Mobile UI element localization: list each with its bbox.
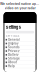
button[interactable]: Sounds: [4, 45, 36, 49]
button[interactable]: Storage: [4, 57, 36, 61]
staticText: Display: [8, 42, 19, 45]
staticText: Help: [8, 64, 15, 68]
button[interactable]: Privacy: [4, 49, 36, 53]
staticText: Storage: [8, 57, 20, 60]
staticText: Privacy: [8, 49, 20, 53]
button[interactable]: About: [4, 61, 36, 64]
staticText: Settings: [6, 25, 21, 30]
staticText: video on your radar: [4, 6, 35, 10]
button[interactable]: Display: [4, 42, 36, 45]
button[interactable]: General: [4, 38, 36, 42]
staticText: SETTINGS: [6, 35, 20, 37]
staticText: Sounds: [8, 46, 19, 49]
button[interactable]: Help: [4, 64, 36, 68]
staticText: General: [8, 38, 20, 41]
button[interactable]: Battery: [4, 53, 36, 57]
staticText: Battery: [8, 53, 19, 56]
staticText: We selected native apps for: [0, 2, 40, 6]
staticText: About: [8, 61, 17, 64]
